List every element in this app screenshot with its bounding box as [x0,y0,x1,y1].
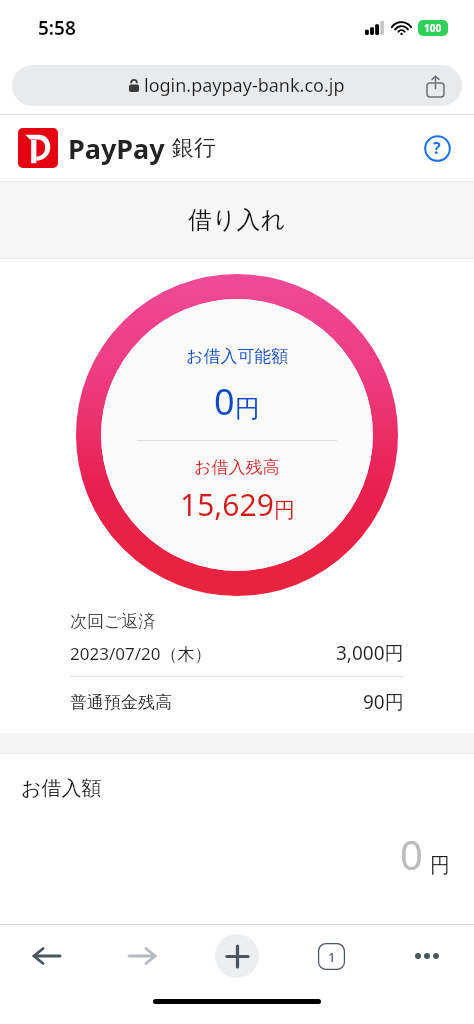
staticText: 0 [400,827,423,881]
staticText: 円 [274,497,295,523]
button[interactable]: login.paypay-bank.co.jp [12,65,462,106]
button[interactable]: Share [422,73,448,99]
staticText: 5:58 [38,15,76,41]
staticText: 1 [328,948,336,966]
button[interactable]: PayPay [18,128,216,168]
button[interactable]: More [379,925,474,987]
button[interactable]: Forward [94,925,189,987]
staticText: 銀行 [172,134,216,162]
staticText: お借入残高 [194,457,280,478]
staticText: お借入可能額 [186,346,289,367]
button[interactable]: Help [422,133,452,163]
staticText: 普通預金残高 [70,692,172,713]
staticText: 円 [430,853,450,878]
staticText: 2023/07/20（木） [70,642,212,665]
staticText: 90円 [363,689,404,715]
staticText: 15,629 [180,484,274,525]
staticText: login.paypay-bank.co.jp [144,73,345,98]
staticText: 次回ご返済 [70,611,156,632]
staticText: 100 [424,21,442,35]
staticText: PayPay [68,130,165,167]
button[interactable]: New Tab [189,925,284,987]
staticText: 0 [214,377,235,426]
button[interactable]: Back [0,925,94,987]
staticText: ? [433,137,441,159]
staticText: 円 [235,393,260,424]
staticText: 借り入れ [188,205,286,235]
staticText: お借入額 [21,776,102,801]
button[interactable]: Tabs [284,925,379,987]
staticText: 3,000円 [336,640,404,666]
